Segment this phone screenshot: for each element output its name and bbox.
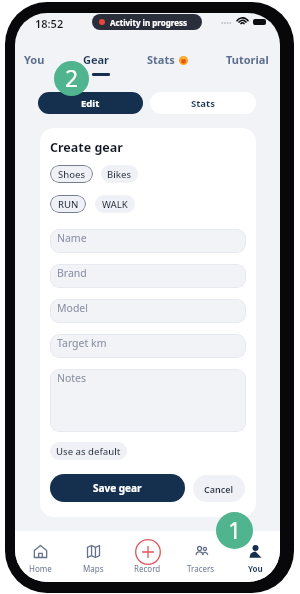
button[interactable]: Name xyxy=(50,229,246,253)
button[interactable]: WALK xyxy=(95,195,135,213)
staticText: Cancel xyxy=(204,483,234,495)
staticText: You xyxy=(248,563,263,574)
button[interactable]: Cancel xyxy=(193,475,245,502)
button[interactable]: Notes xyxy=(50,369,246,432)
button[interactable]: Stats xyxy=(150,92,256,114)
button[interactable]: Stats xyxy=(147,52,188,67)
staticText: Bikes xyxy=(107,168,132,181)
staticText: Use as default xyxy=(56,445,121,458)
button[interactable]: Use as default xyxy=(50,442,127,460)
button[interactable]: Gear xyxy=(83,52,110,67)
button[interactable]: You xyxy=(24,52,45,67)
button[interactable]: Maps xyxy=(67,531,119,582)
staticText: RUN xyxy=(58,198,79,211)
button[interactable]: Bikes xyxy=(101,165,138,183)
button[interactable]: RUN xyxy=(50,195,86,213)
staticText: Model xyxy=(57,301,88,315)
staticText: Save gear xyxy=(93,481,142,495)
button[interactable]: Brand xyxy=(50,264,246,288)
staticText: Name xyxy=(57,231,87,245)
button[interactable]: You xyxy=(229,531,280,582)
staticText: Brand xyxy=(57,266,87,280)
button[interactable]: Edit xyxy=(38,92,143,114)
staticText: 18:52 xyxy=(35,16,64,31)
staticText: 2 xyxy=(65,62,79,93)
staticText: Shoes xyxy=(58,168,86,181)
staticText: Stats xyxy=(191,97,215,110)
staticText: Notes xyxy=(57,371,87,385)
button[interactable]: Model xyxy=(50,299,246,323)
button[interactable]: Tutorial xyxy=(226,52,269,67)
staticText: Tracers xyxy=(187,563,215,574)
button[interactable]: Home xyxy=(15,531,66,582)
button[interactable]: Save gear xyxy=(50,474,185,502)
staticText: Maps xyxy=(83,563,104,574)
staticText: Edit xyxy=(81,97,100,110)
staticText: WALK xyxy=(102,198,128,211)
button[interactable]: Shoes xyxy=(50,165,93,183)
button[interactable]: Target km xyxy=(50,334,246,358)
staticText: Stats xyxy=(147,52,175,67)
staticText: Home xyxy=(29,563,52,574)
button[interactable]: Record xyxy=(121,531,173,582)
button[interactable]: Tracers xyxy=(175,531,227,582)
staticText: 1 xyxy=(228,514,242,545)
staticText: Record xyxy=(134,563,161,574)
staticText: Create gear xyxy=(50,139,123,156)
staticText: Activity in progress xyxy=(110,17,188,28)
staticText: Target km xyxy=(57,336,107,350)
